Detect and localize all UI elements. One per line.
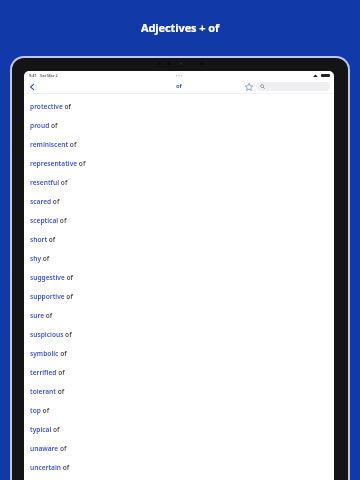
staticText: shy of [30, 254, 50, 263]
staticText: 9:41 [29, 73, 37, 78]
button[interactable]: short of [30, 230, 334, 249]
button[interactable]: scared of [30, 192, 334, 211]
staticText: of [176, 82, 182, 90]
staticText: top of [30, 406, 50, 415]
staticText: sure of [30, 311, 53, 320]
button[interactable]: terrified of [30, 363, 334, 382]
staticText: terrified of [30, 368, 65, 377]
button[interactable]: typical of [30, 420, 334, 439]
button[interactable]: suspicious of [30, 325, 334, 344]
staticText: symbolic of [30, 349, 67, 358]
button[interactable]: suggestive of [30, 268, 334, 287]
staticText: short of [30, 235, 56, 244]
button[interactable]: Back [26, 81, 37, 92]
button[interactable]: protective of [30, 97, 334, 116]
button[interactable]: unaware of [30, 439, 334, 458]
staticText: resentful of [30, 178, 68, 187]
staticText: typical of [30, 425, 60, 434]
button[interactable]: shy of [30, 249, 334, 268]
button[interactable]: tolerant of [30, 382, 334, 401]
button[interactable]: reminiscent of [30, 135, 334, 154]
staticText: tolerant of [30, 387, 65, 396]
button[interactable]: top of [30, 401, 334, 420]
button[interactable]: resentful of [30, 173, 334, 192]
staticText: uncertain of [30, 463, 70, 472]
staticText: scared of [30, 197, 60, 206]
staticText: sceptical of [30, 216, 67, 225]
staticText: proud of [30, 121, 58, 130]
staticText: Sat Mar 2 [40, 73, 58, 78]
button[interactable]: supportive of [30, 287, 334, 306]
button[interactable]: sure of [30, 306, 334, 325]
staticText: unaware of [30, 444, 67, 453]
staticText: supportive of [30, 292, 73, 301]
button[interactable]: uncertain of [30, 458, 334, 477]
staticText: representative of [30, 159, 86, 168]
button[interactable]: representative of [30, 154, 334, 173]
staticText: protective of [30, 102, 72, 111]
staticText: Adjectives + of [141, 20, 220, 35]
staticText: reminiscent of [30, 140, 77, 149]
button[interactable]: sceptical of [30, 211, 334, 230]
button[interactable]: symbolic of [30, 344, 334, 363]
staticText: suggestive of [30, 273, 74, 282]
button[interactable]: proud of [30, 116, 334, 135]
staticText: suspicious of [30, 330, 72, 339]
button[interactable]: Add to favourites [243, 81, 254, 92]
button[interactable]: Search [256, 82, 330, 91]
